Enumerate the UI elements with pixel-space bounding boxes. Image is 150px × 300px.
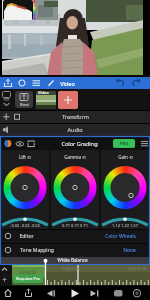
button[interactable] <box>31 77 42 89</box>
staticText: Video <box>60 80 75 87</box>
staticText: 0:00:02.00 <box>61 266 81 271</box>
button[interactable] <box>140 137 149 150</box>
button[interactable]: Root <box>15 91 33 108</box>
button[interactable] <box>120 286 150 300</box>
button[interactable] <box>2 77 14 89</box>
staticText: White Balance <box>57 257 88 263</box>
staticText: 0:00:02.00 <box>19 270 36 275</box>
button[interactable] <box>0 286 30 300</box>
button[interactable] <box>30 286 60 300</box>
staticText: 0:00:07.00 <box>127 266 147 271</box>
staticText: Color Wheels <box>105 233 136 240</box>
staticText: Color Grading <box>61 140 98 147</box>
button[interactable] <box>90 286 120 300</box>
staticText: Gain ⟲ <box>118 154 133 160</box>
button[interactable] <box>129 77 141 89</box>
button[interactable]: Transform <box>0 110 150 123</box>
staticText: Gamma ⟲ <box>64 154 86 160</box>
staticText: Requires Pro <box>16 276 40 281</box>
staticText: Root <box>20 102 29 107</box>
staticText: None <box>123 247 136 254</box>
staticText: 0.71 0.71 0.71 <box>62 223 88 228</box>
button[interactable] <box>113 77 125 89</box>
staticText: PRO <box>120 141 129 146</box>
staticText: Lift ⟲ <box>19 154 31 160</box>
button[interactable] <box>45 77 85 89</box>
staticText: Tone Mapping <box>20 247 54 254</box>
button[interactable]: Audio <box>0 123 150 136</box>
button[interactable]: Tone Mapping <box>1 243 149 257</box>
button[interactable]: PRO <box>113 139 135 148</box>
button[interactable] <box>60 286 90 300</box>
button[interactable] <box>58 91 78 109</box>
button[interactable] <box>13 274 43 283</box>
staticText: -0.02 -0.02 -0.02 <box>10 223 40 228</box>
staticText: Transform <box>62 113 89 120</box>
button[interactable]: Video <box>36 91 56 109</box>
button[interactable]: Editor <box>1 229 149 243</box>
staticText: Audio <box>67 126 83 133</box>
staticText: Video <box>38 91 49 95</box>
staticText: Editor <box>19 233 34 240</box>
button[interactable] <box>17 77 28 89</box>
staticText: 1.14 1.22 1.37 <box>112 223 138 228</box>
